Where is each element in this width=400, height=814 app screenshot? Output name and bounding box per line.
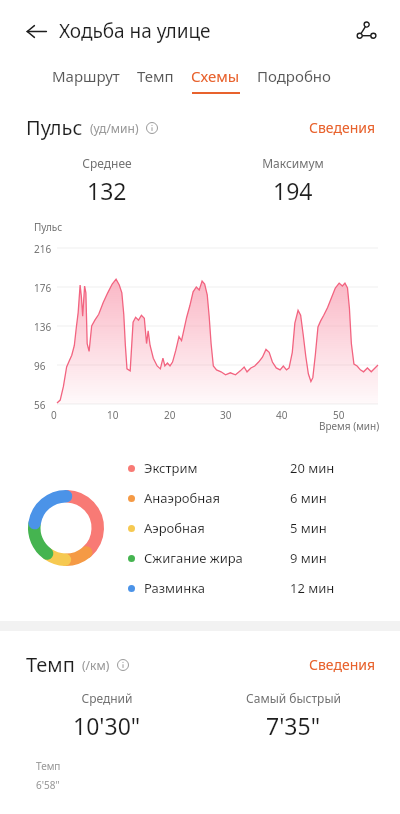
staticText: Максимум	[262, 155, 324, 171]
staticText: 40	[276, 408, 288, 422]
button[interactable]: Назад	[15, 10, 57, 52]
staticText: Пульс	[26, 114, 83, 141]
staticText: Пульс	[34, 220, 63, 234]
staticText: 132	[87, 175, 127, 206]
staticText: 50	[333, 408, 345, 422]
staticText: Темп	[26, 651, 75, 678]
staticText: Сведения	[309, 655, 376, 674]
button[interactable]: Подробно	[257, 62, 331, 98]
staticText: Схемы	[191, 66, 240, 86]
button[interactable]: Сведения	[307, 114, 378, 141]
button[interactable]: Разминка	[128, 573, 378, 603]
button[interactable]: Аэробная	[128, 513, 378, 543]
staticText: Ходьба на улице	[59, 18, 211, 44]
staticText: 194	[273, 175, 313, 206]
staticText: Экстрим	[144, 459, 198, 477]
staticText: Аэробная	[144, 519, 205, 537]
staticText: 5 мин	[290, 519, 327, 537]
staticText: 216	[34, 242, 52, 256]
button[interactable]: Схемы	[191, 62, 240, 98]
staticText: 7'35"	[266, 710, 321, 741]
staticText: Сжигание жира	[144, 549, 243, 567]
staticText: 12 мин	[290, 579, 335, 597]
button[interactable]: Анаэробная	[128, 483, 378, 513]
staticText: Средний	[81, 690, 133, 706]
button[interactable]: Маршрут	[52, 62, 120, 98]
staticText: Темп	[137, 66, 174, 86]
button[interactable]: Сжигание жира	[128, 543, 378, 573]
staticText: 176	[34, 281, 52, 295]
button[interactable]: Темп	[137, 62, 174, 98]
staticText: 30	[220, 408, 232, 422]
staticText: 6'58"	[36, 778, 60, 792]
staticText: Темп	[36, 759, 61, 773]
staticText: 96	[34, 359, 46, 373]
staticText: Анаэробная	[144, 489, 221, 507]
staticText: 20	[164, 408, 176, 422]
staticText: 9 мин	[290, 549, 327, 567]
button[interactable]: Сведения	[307, 651, 378, 678]
staticText: Сведения	[309, 118, 376, 137]
staticText: 10	[107, 408, 119, 422]
staticText: Разминка	[144, 579, 206, 597]
staticText: 6 мин	[290, 489, 327, 507]
staticText: Среднее	[82, 155, 132, 171]
staticText: 10'30"	[73, 710, 141, 741]
button[interactable]: Информация	[143, 119, 161, 137]
staticText: 56	[34, 398, 46, 412]
staticText: 20 мин	[290, 459, 335, 477]
button[interactable]: Экстрим	[128, 453, 378, 483]
staticText: 136	[34, 320, 52, 334]
staticText: 0	[51, 408, 57, 422]
button[interactable]: Информация	[114, 656, 132, 674]
staticText: (/км)	[82, 657, 110, 673]
staticText: Маршрут	[52, 66, 120, 86]
staticText: Самый быстрый	[246, 690, 341, 706]
staticText: Подробно	[257, 66, 331, 86]
staticText: Время (мин)	[319, 419, 380, 433]
staticText: (уд/мин)	[90, 120, 139, 136]
button[interactable]: Поделиться	[346, 10, 388, 52]
